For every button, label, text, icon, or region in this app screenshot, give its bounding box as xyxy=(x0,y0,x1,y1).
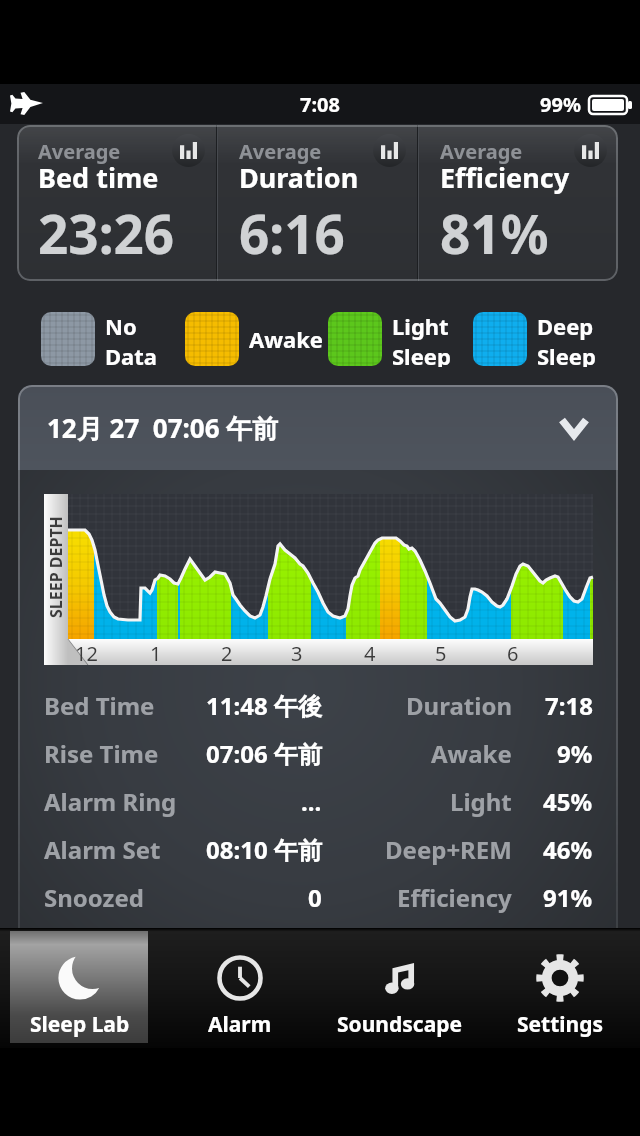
staticText: Data xyxy=(105,341,158,367)
button[interactable]: Alarm xyxy=(160,928,320,1048)
staticText: Awake xyxy=(249,324,324,354)
button[interactable]: Statistics xyxy=(373,134,406,167)
button[interactable]: Statistics xyxy=(172,134,205,167)
staticText: 2 xyxy=(221,640,233,664)
staticText: 12 xyxy=(75,640,98,664)
staticText: 6:16 xyxy=(239,197,345,269)
staticText: Efficiency xyxy=(397,881,512,914)
staticText: Light xyxy=(392,311,449,341)
staticText: 9% xyxy=(557,737,593,770)
staticText: No xyxy=(105,311,137,341)
staticText: Awake xyxy=(431,737,512,770)
staticText: 3 xyxy=(291,640,303,664)
staticText: 08:10 午前 xyxy=(206,833,322,866)
staticText: 4 xyxy=(364,640,376,664)
staticText: 45% xyxy=(543,785,593,818)
staticText: Alarm Set xyxy=(44,833,161,866)
staticText: 91% xyxy=(543,881,593,914)
button[interactable]: 12月 27 07:06 午前 xyxy=(18,385,618,470)
staticText: 6 xyxy=(507,640,519,664)
staticText: 12月 27 07:06 午前 xyxy=(47,410,279,446)
staticText: Soundscape xyxy=(337,1010,463,1039)
staticText: Light xyxy=(450,785,512,818)
staticText: ... xyxy=(301,785,322,818)
staticText: Sleep xyxy=(537,341,596,367)
staticText: Average xyxy=(239,138,322,165)
staticText: Alarm Ring xyxy=(44,785,177,818)
staticText: 99% xyxy=(540,91,581,118)
staticText: Deep xyxy=(537,311,594,341)
staticText: 07:06 午前 xyxy=(206,737,322,770)
button[interactable]: Soundscape xyxy=(320,928,480,1048)
button[interactable]: Settings xyxy=(480,928,640,1048)
staticText: 7:08 xyxy=(300,91,340,118)
staticText: Deep+REM xyxy=(385,833,512,866)
staticText: 46% xyxy=(543,833,593,866)
button[interactable]: No xyxy=(41,311,158,367)
button[interactable]: Average xyxy=(419,125,618,281)
staticText: 5 xyxy=(435,640,447,664)
staticText: 23:26 xyxy=(38,197,175,269)
button[interactable]: Statistics xyxy=(574,134,607,167)
button[interactable]: Average xyxy=(17,125,216,281)
button[interactable]: Average xyxy=(218,125,417,281)
staticText: Rise Time xyxy=(44,737,159,770)
staticText: Duration xyxy=(406,689,512,722)
staticText: Snoozed xyxy=(44,881,144,914)
staticText: 11:48 午後 xyxy=(206,689,322,722)
staticText: Sleep xyxy=(392,341,451,367)
staticText: Bed time xyxy=(38,159,159,196)
staticText: Average xyxy=(38,138,121,165)
staticText: Alarm xyxy=(208,1010,272,1039)
button[interactable]: Deep xyxy=(473,311,596,367)
staticText: Sleep Lab xyxy=(30,1010,130,1039)
staticText: 81% xyxy=(440,197,549,269)
staticText: Efficiency xyxy=(440,159,570,196)
staticText: 1 xyxy=(150,640,162,664)
button[interactable]: Awake xyxy=(185,311,324,367)
button[interactable]: Light xyxy=(328,311,451,367)
staticText: Duration xyxy=(239,159,359,196)
button[interactable]: Sleep Lab xyxy=(0,928,160,1048)
staticText: Average xyxy=(440,138,523,165)
staticText: 0 xyxy=(308,881,322,914)
staticText: SLEEP DEPTH xyxy=(45,516,67,618)
staticText: Bed Time xyxy=(44,689,155,722)
other: Expand xyxy=(562,420,586,435)
staticText: Settings xyxy=(517,1010,604,1039)
staticText: 7:18 xyxy=(545,689,593,722)
